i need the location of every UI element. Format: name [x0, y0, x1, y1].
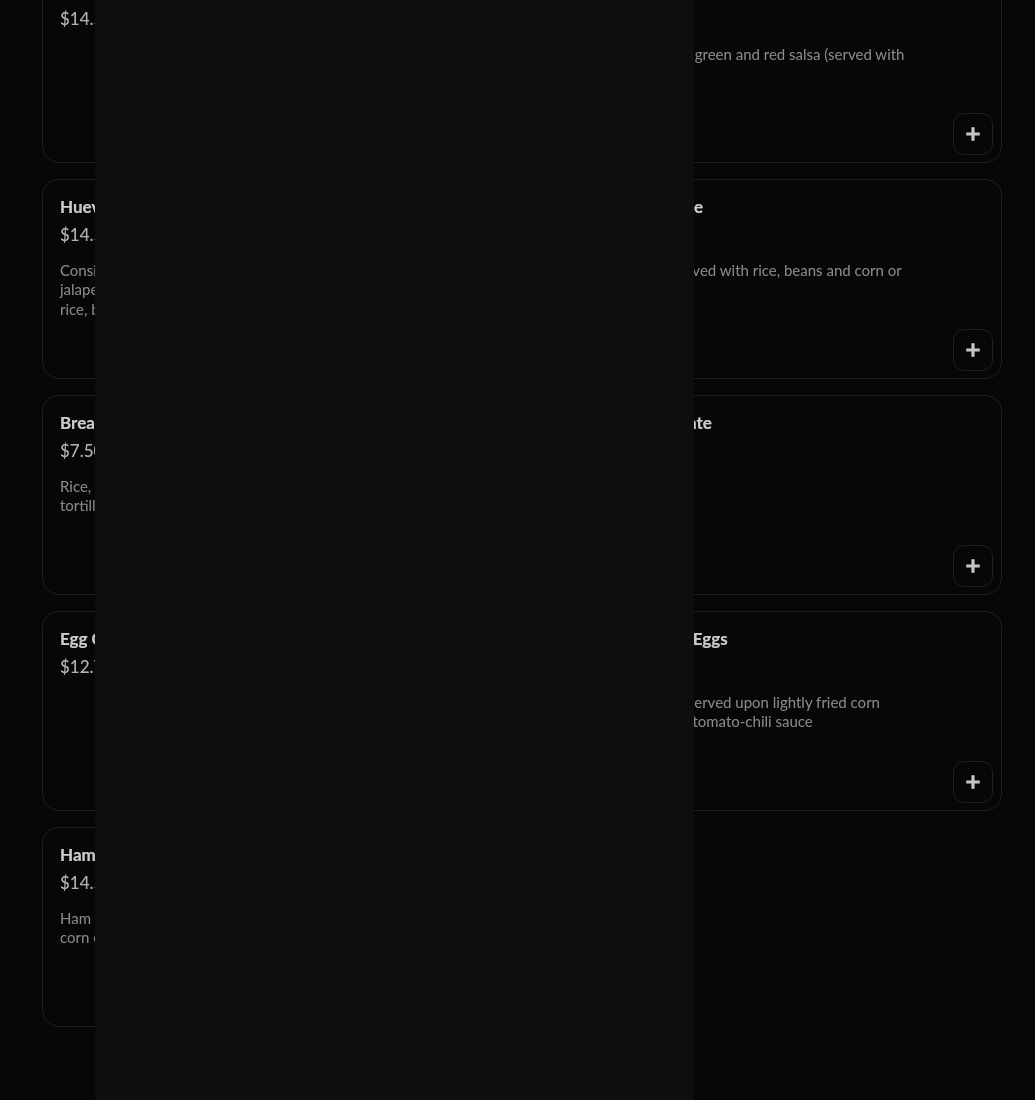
staticText: Rice, beans, plantains and cheese served… [60, 477, 432, 515]
button[interactable]: Breakfast Plate [42, 395, 504, 595]
staticText: $14.50 [60, 224, 114, 244]
staticText: $14.50 [60, 8, 114, 28]
staticText: Ham and two eggs any style served with r… [60, 909, 432, 947]
staticText: Consists of scrambled eggs with tomato, … [60, 261, 432, 319]
button[interactable]: Eggs Mexican Style [540, 179, 1002, 379]
staticText: Huevos a la Mexicana [60, 196, 225, 216]
staticText: Eggs and chorizo served with rice, beans… [558, 261, 930, 299]
button[interactable]: Add to order [953, 113, 993, 155]
staticText: Crispy tortilla chips served upon lightl… [558, 693, 930, 731]
staticText: Breakfast Plate [60, 412, 176, 432]
button[interactable]: Huevos Divorciados [540, 0, 1002, 163]
staticText: Eggs Mexican Style [558, 196, 704, 216]
button[interactable]: Cafe Breakfast Plate [540, 395, 1002, 595]
button[interactable]: Add to order [953, 761, 993, 803]
staticText: Egg Chilaquiles [60, 628, 174, 648]
staticText: $7.50 [60, 440, 104, 460]
staticText: Cafe Breakfast Plate [558, 412, 712, 432]
staticText: $12.75 [60, 656, 114, 676]
staticText: $14.50 [60, 872, 114, 892]
button[interactable]: Huevos Divorciados [42, 0, 504, 163]
button[interactable]: Egg Chilaquiles [42, 611, 504, 811]
button[interactable]: Add to order [953, 329, 993, 371]
button[interactable]: Tortilla Chips and Eggs [540, 611, 1002, 811]
staticText: Two eggs divided by green and red salsa … [558, 45, 930, 83]
button[interactable]: Huevos a la Mexicana [42, 179, 504, 379]
staticText: Tortilla Chips and Eggs [558, 628, 728, 648]
button[interactable]: Add to order [953, 545, 993, 587]
staticText: Ham and Eggs [60, 844, 167, 864]
button[interactable]: Ham and Eggs [42, 827, 504, 1027]
